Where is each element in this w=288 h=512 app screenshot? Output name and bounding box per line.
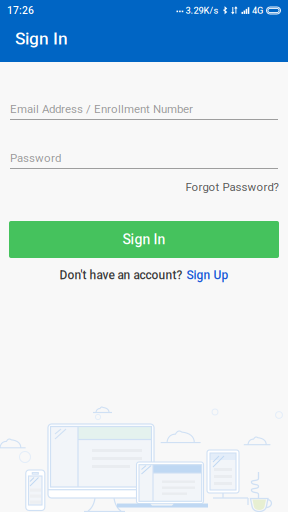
staticText: 17:26 bbox=[7, 4, 34, 17]
staticText: Sign Up bbox=[186, 268, 228, 282]
staticText: 4G bbox=[252, 5, 263, 16]
staticText: Forgot Password? bbox=[185, 180, 278, 194]
staticText: 3.29K/s bbox=[185, 5, 218, 16]
button[interactable]: Sign In bbox=[9, 221, 279, 258]
staticText: Sign In bbox=[122, 231, 165, 248]
staticText: Sign In bbox=[15, 28, 68, 49]
button[interactable]: Sign Up bbox=[186, 268, 228, 282]
staticText: Email Address / Enrollment Number bbox=[10, 102, 193, 116]
staticText: Password bbox=[10, 151, 61, 165]
button[interactable]: Forgot Password? bbox=[9, 179, 278, 195]
staticText: Don't have an account? bbox=[59, 268, 182, 282]
